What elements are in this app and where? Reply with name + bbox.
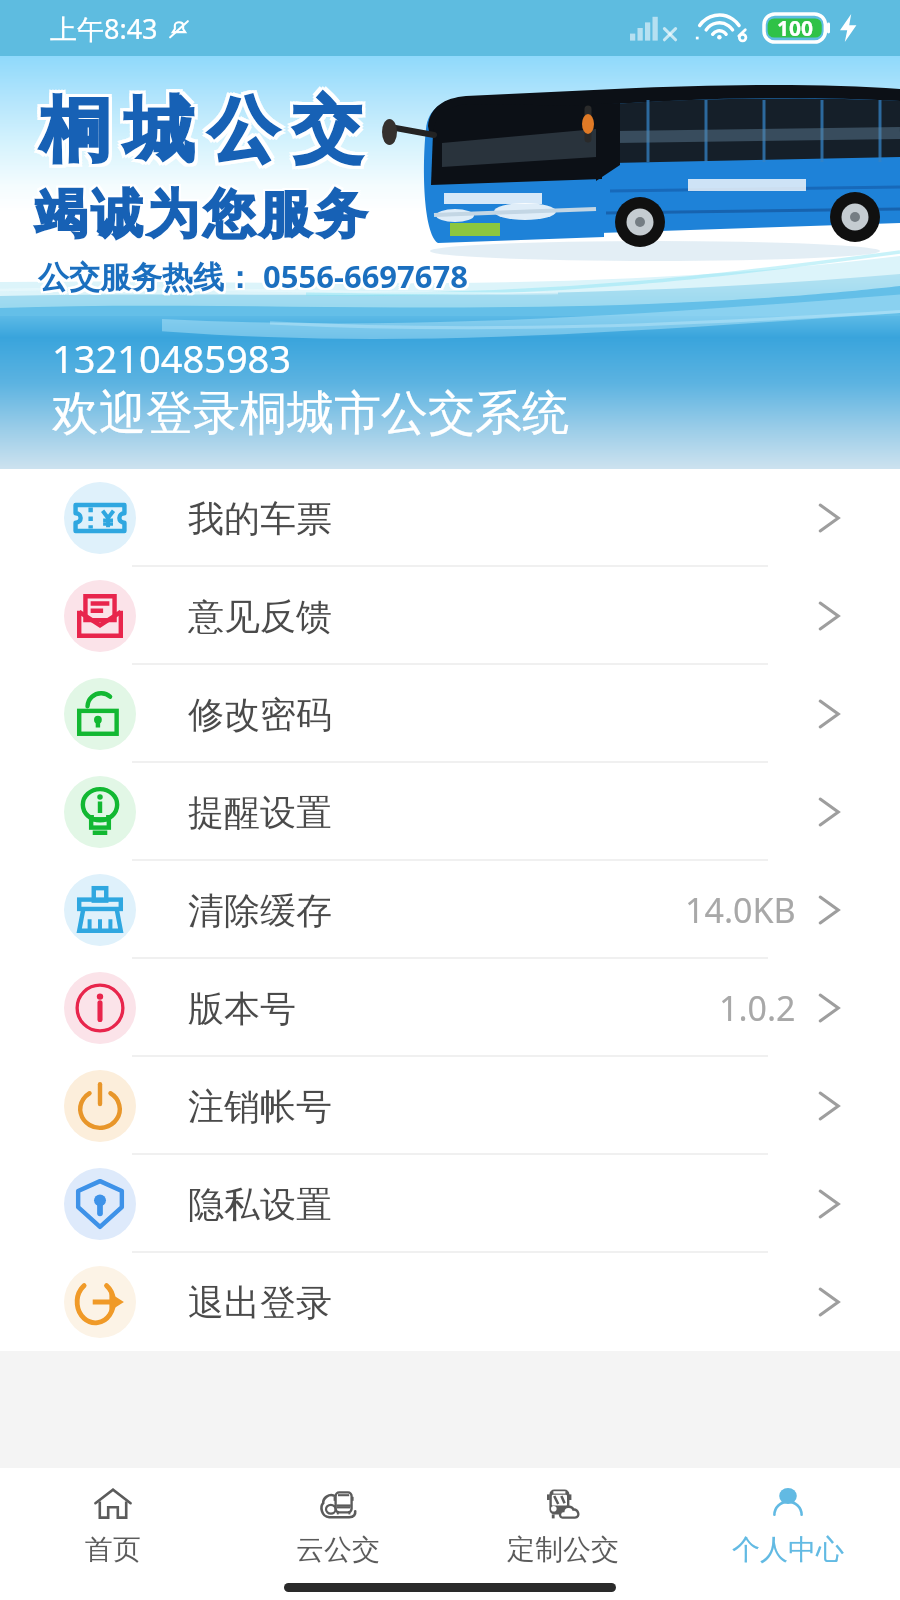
- staticText: 退出登录: [188, 1280, 332, 1325]
- staticText: 提醒设置: [188, 790, 332, 835]
- staticText: 桐城公交: [33, 90, 369, 178]
- staticText: 竭诚为您服务: [35, 180, 371, 246]
- staticText: 注销帐号: [188, 1084, 332, 1129]
- staticText: 公交服务热线： 0556-6697678: [40, 257, 471, 299]
- staticText: 隐私设置: [188, 1182, 332, 1227]
- button[interactable]: 版本号: [0, 959, 900, 1057]
- staticText: 1.0.2: [719, 985, 796, 1031]
- staticText: 公交服务热线： 0556-6697678: [38, 253, 469, 295]
- button[interactable]: 清除缓存: [0, 861, 900, 959]
- staticText: 修改密码: [188, 692, 332, 737]
- staticText: 公交服务热线： 0556-6697678: [40, 253, 471, 295]
- staticText: 竭诚为您服务: [35, 182, 371, 248]
- staticText: 13210485983: [52, 332, 292, 384]
- button[interactable]: 隐私设置: [0, 1155, 900, 1253]
- staticText: 桐城公交: [33, 87, 369, 175]
- staticText: 个人中心: [732, 1532, 844, 1567]
- staticText: 清除缓存: [188, 888, 332, 933]
- staticText: 意见反馈: [188, 594, 332, 639]
- staticText: 14.0KB: [685, 887, 796, 933]
- staticText: 公交服务热线： 0556-6697678: [36, 253, 467, 295]
- staticText: 桐城公交: [30, 84, 366, 172]
- button[interactable]: 定制公交: [450, 1476, 675, 1574]
- staticText: 公交服务热线： 0556-6697678: [40, 255, 471, 297]
- button[interactable]: 意见反馈: [0, 567, 900, 665]
- staticText: 竭诚为您服务: [33, 182, 369, 248]
- staticText: 版本号: [188, 986, 296, 1031]
- staticText: 定制公交: [507, 1532, 619, 1567]
- staticText: 竭诚为您服务: [31, 182, 367, 248]
- staticText: 竭诚为您服务: [33, 180, 369, 246]
- staticText: 上午8:43: [50, 10, 158, 47]
- staticText: 竭诚为您服务: [35, 184, 371, 250]
- staticText: 云公交: [296, 1532, 380, 1567]
- button[interactable]: 修改密码: [0, 665, 900, 763]
- staticText: 桐城公交: [36, 84, 372, 172]
- staticText: 竭诚为您服务: [33, 184, 369, 250]
- staticText: 桐城公交: [30, 90, 366, 178]
- staticText: 我的车票: [188, 496, 332, 541]
- button[interactable]: 注销帐号: [0, 1057, 900, 1155]
- button[interactable]: 个人中心: [675, 1476, 900, 1574]
- button[interactable]: 首页: [0, 1476, 225, 1574]
- staticText: 欢迎登录桐城市公交系统: [52, 384, 569, 443]
- button[interactable]: 提醒设置: [0, 763, 900, 861]
- staticText: 公交服务热线： 0556-6697678: [36, 257, 467, 299]
- staticText: 桐城公交: [33, 84, 369, 172]
- staticText: 桐城公交: [36, 87, 372, 175]
- staticText: 100: [777, 14, 814, 43]
- staticText: 首页: [85, 1532, 141, 1567]
- button[interactable]: 我的车票: [0, 469, 900, 567]
- button[interactable]: 退出登录: [0, 1253, 900, 1351]
- staticText: 竭诚为您服务: [31, 184, 367, 250]
- staticText: 公交服务热线： 0556-6697678: [36, 255, 467, 297]
- staticText: 公交服务热线： 0556-6697678: [38, 257, 469, 299]
- button[interactable]: 云公交: [225, 1476, 450, 1574]
- staticText: 公交服务热线： 0556-6697678: [38, 255, 469, 297]
- staticText: 桐城公交: [36, 90, 372, 178]
- staticText: 竭诚为您服务: [31, 180, 367, 246]
- staticText: 桐城公交: [30, 87, 366, 175]
